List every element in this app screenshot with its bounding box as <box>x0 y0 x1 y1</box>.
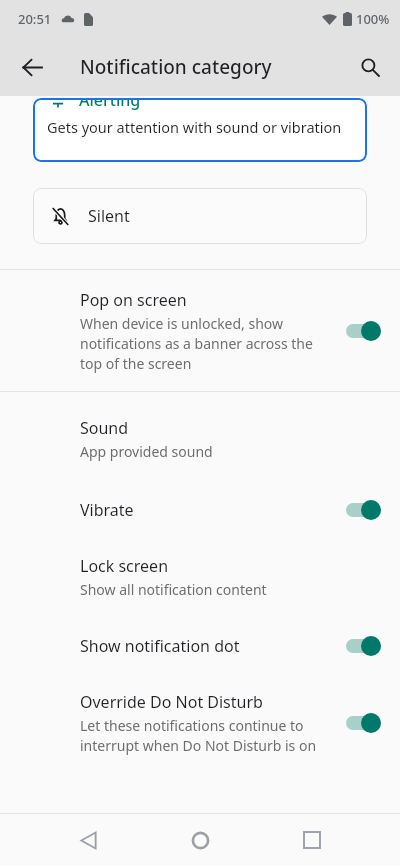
button[interactable]: Recents <box>288 816 336 864</box>
staticText: Show all notification content <box>80 580 267 599</box>
button[interactable]: Pop on screen <box>0 270 400 391</box>
button[interactable]: Silent <box>33 188 367 244</box>
staticText: Show notification dot <box>80 635 240 657</box>
button[interactable]: Lock screen <box>0 543 400 613</box>
button[interactable]: Sound <box>0 392 400 475</box>
staticText: Silent <box>88 205 130 227</box>
button[interactable]: Toggle Show notification dot <box>340 633 386 659</box>
staticText: Lock screen <box>80 555 169 577</box>
button[interactable]: Home <box>176 816 224 864</box>
button[interactable]: Vibrate <box>0 475 400 543</box>
staticText: Let these notifications continue to inte… <box>80 716 328 755</box>
staticText: 100% <box>356 10 390 28</box>
staticText: When device is unlocked, show notificati… <box>80 314 328 373</box>
staticText: Sound <box>80 417 129 439</box>
button[interactable]: Toggle Pop on screen <box>340 318 386 344</box>
button[interactable]: Toggle Vibrate <box>340 497 386 523</box>
button[interactable]: Toggle Override Do Not Disturb <box>340 710 386 736</box>
staticText: Pop on screen <box>80 289 187 311</box>
button[interactable]: Back <box>10 45 54 89</box>
staticText: Override Do Not Disturb <box>80 691 263 713</box>
button[interactable]: Override Do Not Disturb <box>0 679 400 767</box>
staticText: Gets your attention with sound or vibrat… <box>47 117 342 137</box>
staticText: Notification category <box>80 54 272 80</box>
button[interactable]: Back <box>64 816 112 864</box>
staticText: Vibrate <box>80 499 134 521</box>
button[interactable]: Show notification dot <box>0 613 400 679</box>
staticText: App provided sound <box>80 442 213 461</box>
staticText: 20:51 <box>18 10 52 28</box>
staticText: Alerting <box>79 98 141 111</box>
button[interactable]: Search <box>348 45 392 89</box>
button[interactable]: Alerting <box>33 98 367 162</box>
